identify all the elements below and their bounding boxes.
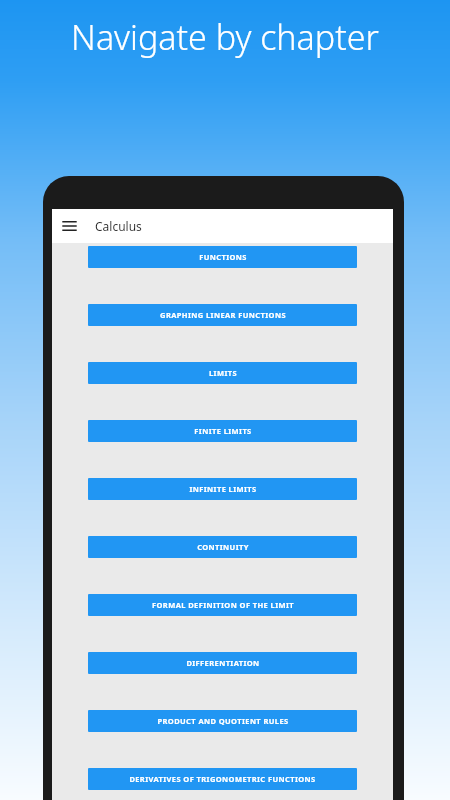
staticText: GRAPHING LINEAR FUNCTIONS xyxy=(160,310,286,320)
button[interactable]: CONTINUITY xyxy=(88,536,357,558)
button[interactable]: PRODUCT AND QUOTIENT RULES xyxy=(88,710,357,732)
button[interactable]: DIFFERENTIATION xyxy=(88,652,357,674)
staticText: DERIVATIVES OF TRIGONOMETRIC FUNCTIONS xyxy=(129,774,316,784)
button[interactable]: FINITE LIMITS xyxy=(88,420,357,442)
staticText: Calculus xyxy=(95,218,142,234)
button[interactable]: FORMAL DEFINITION OF THE LIMIT xyxy=(88,594,357,616)
button[interactable]: INFINITE LIMITS xyxy=(88,478,357,500)
staticText: INFINITE LIMITS xyxy=(189,484,257,494)
button[interactable]: Open navigation menu xyxy=(56,213,82,239)
button[interactable]: GRAPHING LINEAR FUNCTIONS xyxy=(88,304,357,326)
button[interactable]: DERIVATIVES OF TRIGONOMETRIC FUNCTIONS xyxy=(88,768,357,790)
staticText: LIMITS xyxy=(209,368,237,378)
staticText: FUNCTIONS xyxy=(199,252,247,262)
staticText: FORMAL DEFINITION OF THE LIMIT xyxy=(152,600,294,610)
staticText: FINITE LIMITS xyxy=(194,426,252,436)
staticText: DIFFERENTIATION xyxy=(186,658,260,668)
staticText: PRODUCT AND QUOTIENT RULES xyxy=(157,716,289,726)
staticText: CONTINUITY xyxy=(197,542,249,552)
staticText: Navigate by chapter xyxy=(0,14,450,60)
button[interactable]: LIMITS xyxy=(88,362,357,384)
button[interactable]: FUNCTIONS xyxy=(88,246,357,268)
